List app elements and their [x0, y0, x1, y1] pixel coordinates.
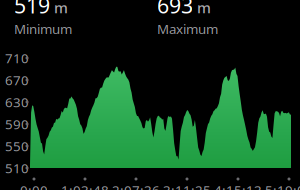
staticText: 693 [157, 0, 193, 19]
staticText: 519 [14, 0, 50, 19]
staticText: 630 [5, 93, 29, 111]
staticText: 2:07:36 [112, 181, 160, 190]
staticText: 3:11:25 [163, 181, 211, 190]
staticText: m [197, 0, 211, 17]
staticText: 5:19:01 [265, 181, 300, 190]
staticText: 0:00 [20, 181, 48, 190]
staticText: 4:15:13 [214, 181, 262, 190]
staticText: 1:03:48 [61, 181, 109, 190]
staticText: 550 [5, 137, 29, 155]
staticText: 510 [5, 159, 29, 177]
staticText: m [54, 0, 68, 17]
staticText: Maximum [157, 20, 218, 38]
staticText: 670 [5, 71, 29, 89]
staticText: Minimum [14, 20, 72, 38]
staticText: 590 [5, 115, 29, 133]
staticText: 710 [5, 49, 29, 67]
